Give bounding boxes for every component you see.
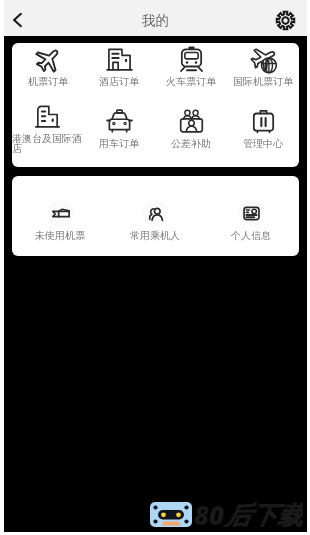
button[interactable]: 常用乘机人 — [107, 176, 203, 256]
button[interactable]: 国际机票订单 — [227, 43, 299, 105]
button[interactable]: Back — [0, 3, 34, 37]
staticText: 80后下载 — [194, 497, 303, 527]
button[interactable]: 港澳台及国际酒店 — [12, 105, 83, 167]
staticText: 管理中心 — [243, 137, 283, 150]
staticText: 酒店订单 — [99, 75, 139, 88]
staticText: 常用乘机人 — [130, 229, 180, 242]
staticText: 我的 — [142, 12, 169, 29]
button[interactable]: 未使用机票 — [12, 176, 107, 256]
staticText: 公差补助 — [171, 137, 211, 150]
button[interactable]: 公差补助 — [155, 105, 227, 167]
staticText: 港澳台及国际酒店 — [12, 132, 83, 155]
button[interactable]: 管理中心 — [227, 105, 299, 167]
button[interactable]: Settings — [268, 3, 302, 37]
staticText: 机票订单 — [28, 75, 68, 88]
staticText: 未使用机票 — [35, 229, 85, 242]
staticText: 用车订单 — [99, 137, 139, 150]
button[interactable]: 机票订单 — [12, 43, 83, 105]
staticText: 国际机票订单 — [233, 75, 293, 88]
button[interactable]: 火车票订单 — [155, 43, 227, 105]
button[interactable]: 个人信息 — [203, 176, 299, 256]
staticText: 个人信息 — [231, 229, 271, 242]
button[interactable]: 用车订单 — [83, 105, 155, 167]
button[interactable]: 酒店订单 — [83, 43, 155, 105]
staticText: 火车票订单 — [166, 75, 216, 88]
